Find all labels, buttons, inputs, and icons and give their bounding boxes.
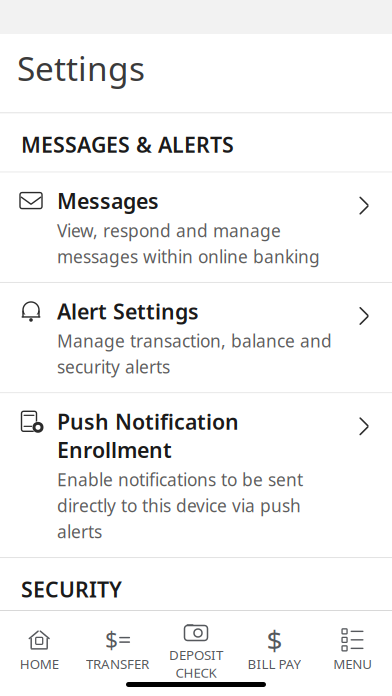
staticText: BILL PAY <box>247 655 301 673</box>
staticText: CHECK <box>175 664 216 681</box>
staticText: Settings <box>17 46 145 90</box>
staticText: TRANSFER <box>86 655 149 673</box>
staticText: $ <box>266 621 282 658</box>
button[interactable]: $ <box>78 620 157 677</box>
button[interactable]: Push Notification Enrollment <box>0 393 392 557</box>
button[interactable]: HOME <box>0 620 78 677</box>
button[interactable]: $ <box>235 620 314 677</box>
staticText: Manage transaction, balance and security… <box>57 329 332 378</box>
button[interactable]: Touch/Face ID <box>0 617 392 696</box>
staticText: Enable notifications to be sent directly… <box>57 468 303 543</box>
staticText: MESSAGES & ALERTS <box>21 130 234 159</box>
staticText: View, respond and manage messages within… <box>57 219 320 268</box>
staticText: DEPOSIT <box>169 646 223 664</box>
button[interactable]: DEPOSIT <box>157 611 235 685</box>
button[interactable]: MENU <box>314 620 392 677</box>
staticText: HOME <box>20 655 59 673</box>
staticText: Touch/Face ID <box>57 631 205 660</box>
button[interactable]: Messages <box>0 173 392 282</box>
staticText: Messages <box>57 187 159 215</box>
staticText: Enable or disable biometric login access… <box>57 664 324 696</box>
staticText: MENU <box>333 655 372 673</box>
staticText: SECURITY <box>21 575 122 603</box>
staticText: Alert Settings <box>57 297 199 325</box>
staticText: $ <box>105 625 118 655</box>
button[interactable]: Alert Settings <box>0 283 392 392</box>
staticText: Push Notification Enrollment <box>57 407 239 464</box>
